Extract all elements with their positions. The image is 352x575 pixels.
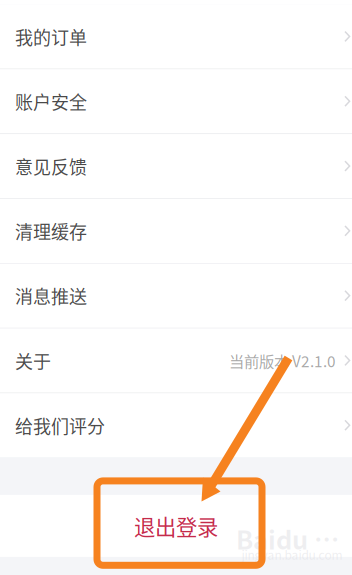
button[interactable]: 消息推送 <box>0 264 352 328</box>
button[interactable]: 关于 <box>0 328 352 393</box>
staticText: 当前版本 V2.1.0 <box>229 349 336 372</box>
button[interactable]: 给我们评分 <box>0 393 352 457</box>
staticText: jingyan.baidu.com <box>241 546 342 563</box>
button[interactable]: 退出登录 <box>0 495 352 557</box>
staticText: 清理缓存 <box>15 218 87 244</box>
staticText: 消息推送 <box>15 283 87 309</box>
staticText: 关于 <box>15 347 51 374</box>
button[interactable]: 清理缓存 <box>0 199 352 263</box>
staticText: 给我们评分 <box>15 412 105 438</box>
staticText: 账户安全 <box>15 88 87 114</box>
staticText: 意见反馈 <box>15 153 87 179</box>
button[interactable]: 意见反馈 <box>0 134 352 198</box>
staticText: 退出登录 <box>134 510 218 541</box>
staticText: Baidu 经验 <box>236 520 348 557</box>
staticText: 我的订单 <box>15 23 87 50</box>
button[interactable]: 我的订单 <box>0 4 352 69</box>
button[interactable]: 账户安全 <box>0 69 352 133</box>
